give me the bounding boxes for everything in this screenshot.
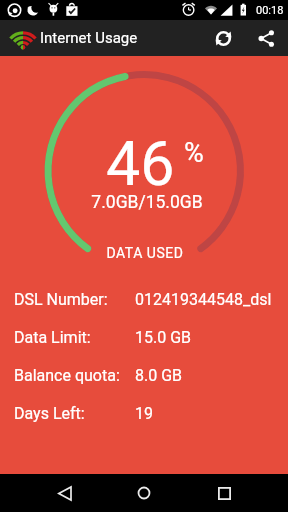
staticText: Internet Usage — [40, 29, 138, 47]
button[interactable]: Days Left: — [0, 394, 288, 432]
button[interactable]: Data Limit: — [0, 318, 288, 356]
staticText: Data Limit: — [14, 328, 91, 347]
staticText: DSL Number: — [14, 290, 108, 309]
staticText: 19 — [135, 404, 153, 423]
staticText: % — [184, 137, 204, 169]
staticText: 15.0 GB — [135, 328, 192, 347]
button[interactable]: Share — [245, 20, 288, 56]
button[interactable]: DSL Number: — [0, 280, 288, 318]
staticText: Balance quota: — [14, 366, 120, 385]
button[interactable]: Home — [120, 474, 168, 512]
staticText: 00:18 — [256, 4, 284, 17]
staticText: 7.0GB/15.0GB — [3, 192, 288, 213]
button[interactable]: Refresh — [202, 20, 245, 56]
button[interactable]: Back — [40, 474, 88, 512]
staticText: 46 — [106, 128, 175, 199]
button[interactable]: Balance quota: — [0, 356, 288, 394]
staticText: DATA USED — [1, 245, 288, 261]
staticText: 012419344548_dsl — [135, 290, 272, 309]
button[interactable]: Recent apps — [200, 474, 248, 512]
staticText: 8.0 GB — [135, 366, 183, 385]
staticText: Days Left: — [14, 404, 85, 423]
